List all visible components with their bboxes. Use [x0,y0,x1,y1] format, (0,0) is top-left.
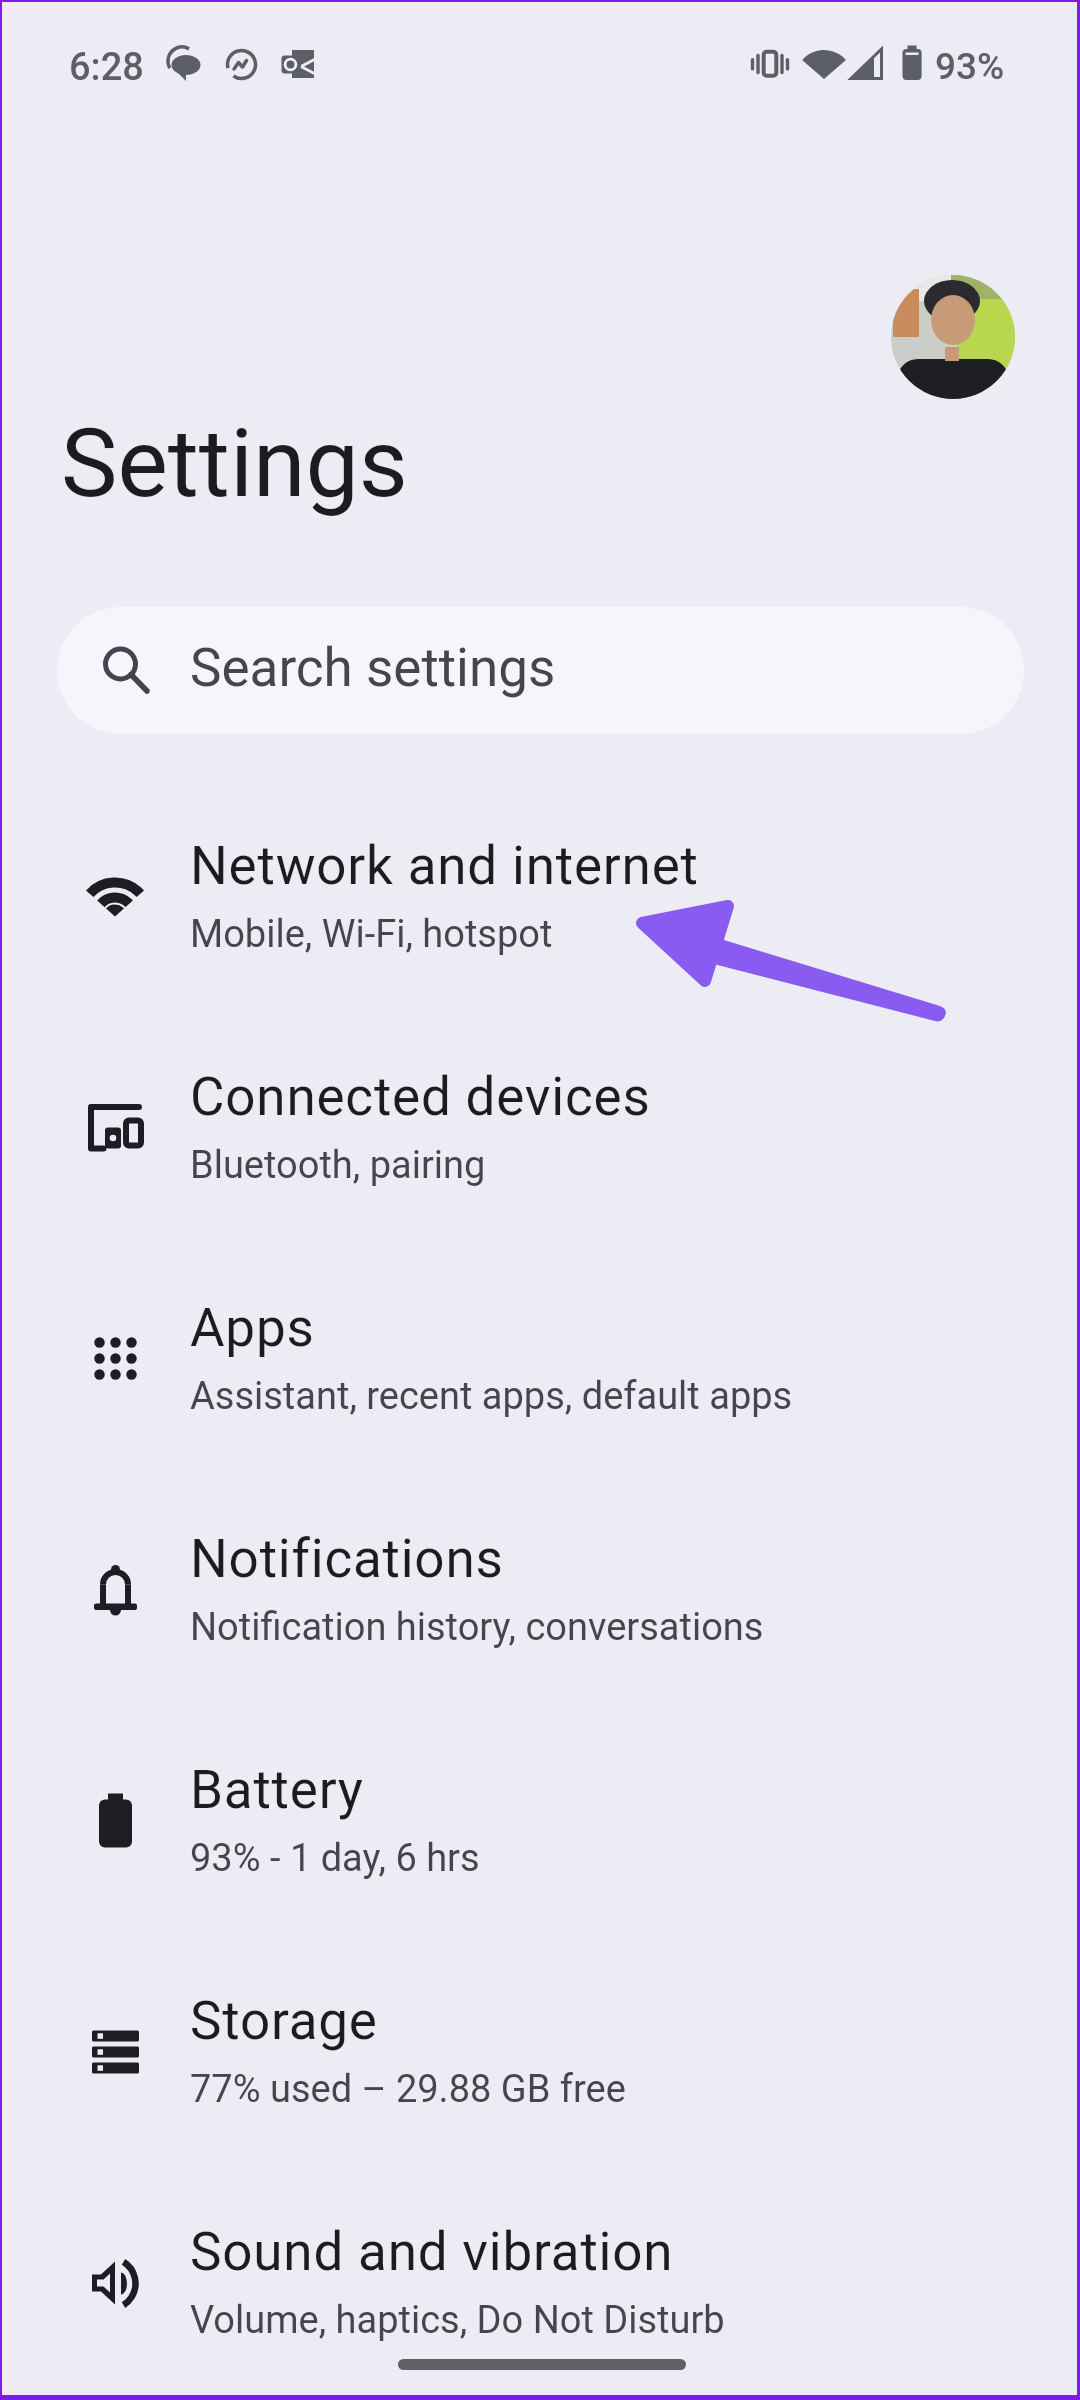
staticText: Connected devices [190,1066,651,1128]
staticText: Mobile, Wi-Fi, hotspot [190,912,553,957]
staticText: 6:28 [69,45,144,90]
button[interactable]: Search settings [57,607,1024,734]
staticText: Bluetooth, pairing [190,1143,486,1188]
button[interactable]: Apps [0,1293,1080,1463]
button[interactable] [891,275,1015,399]
staticText: 93% [935,45,1005,88]
button[interactable]: Connected devices [0,1062,1080,1232]
staticText: Settings [61,408,408,519]
staticText: Network and internet [190,835,699,897]
staticText: Notification history, conversations [190,1605,764,1650]
staticText: 93% - 1 day, 6 hrs [190,1836,480,1881]
button[interactable]: Network and internet [0,831,1080,1001]
staticText: Battery [190,1759,364,1821]
staticText: Volume, haptics, Do Not Disturb [190,2298,725,2343]
staticText: Assistant, recent apps, default apps [190,1374,793,1419]
staticText: Notifications [190,1528,504,1590]
staticText: Storage [190,1990,378,2052]
button[interactable]: Sound and vibration [0,2217,1080,2387]
staticText: Apps [190,1297,315,1359]
button[interactable]: Battery [0,1755,1080,1925]
staticText: 77% used – 29.88 GB free [190,2067,626,2112]
staticText: Sound and vibration [190,2221,674,2283]
button[interactable]: Notifications [0,1524,1080,1694]
staticText: Search settings [190,637,556,699]
button[interactable]: Storage [0,1986,1080,2156]
